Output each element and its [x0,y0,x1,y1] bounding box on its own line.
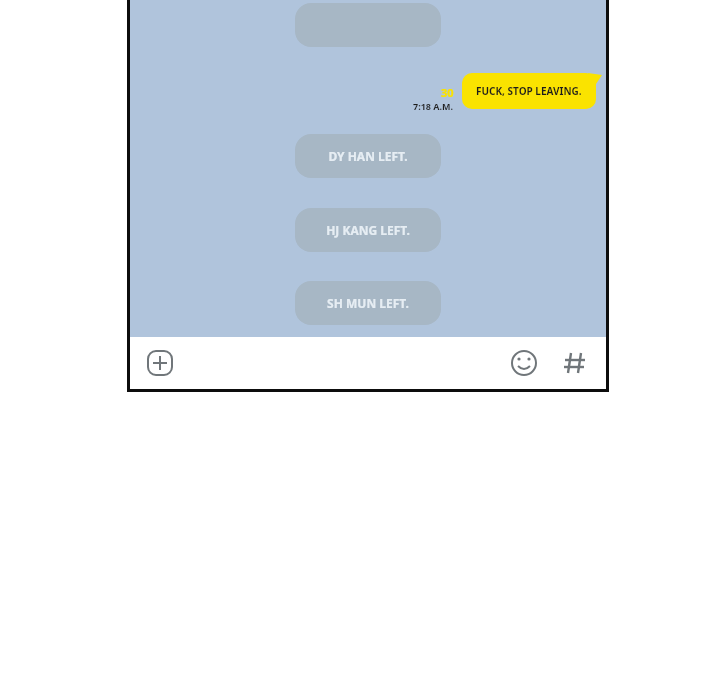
staticText: HJ KANG LEFT. [326,222,410,238]
button[interactable]: FUCK, STOP LEAVING. [462,73,596,109]
button[interactable]: Hashtag [562,349,590,377]
staticText: 7:18 A.M. [413,100,454,112]
button[interactable]: Emoji [510,349,538,377]
staticText: 30 [441,85,454,100]
staticText: FUCK, STOP LEAVING. [476,84,582,98]
button[interactable]: DY HAN LEFT. [295,134,441,178]
staticText: SH MUN LEFT. [327,295,409,311]
button[interactable]: SH MUN LEFT. [295,281,441,325]
button[interactable]: Add attachment [146,349,174,377]
staticText: DY HAN LEFT. [328,148,408,164]
button[interactable]: HJ KANG LEFT. [295,208,441,252]
button[interactable] [295,3,441,47]
